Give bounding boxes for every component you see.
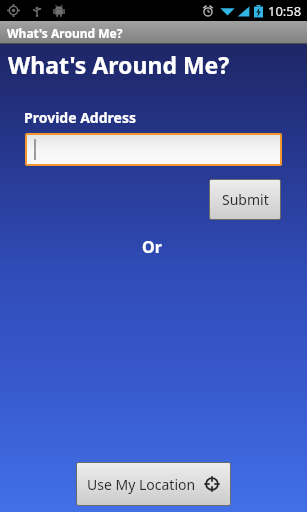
button[interactable]: Submit xyxy=(210,180,280,219)
staticText: What's Around Me? xyxy=(7,25,123,41)
staticText: 10:58 xyxy=(268,2,302,20)
button[interactable]: Address input xyxy=(27,135,280,164)
staticText: Use My Location xyxy=(87,475,196,494)
staticText: Submit xyxy=(222,190,269,209)
button[interactable]: Use My Location xyxy=(77,463,230,505)
staticText: What's Around Me? xyxy=(8,49,230,80)
staticText: Or xyxy=(142,236,162,258)
staticText: Provide Address xyxy=(24,108,136,127)
